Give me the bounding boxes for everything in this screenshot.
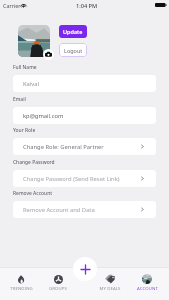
button[interactable]: Change Role: General Partner — [13, 138, 156, 155]
staticText: Email — [13, 96, 26, 103]
staticText: Change Password — [13, 159, 55, 166]
staticText: GROUPS — [49, 285, 67, 291]
button[interactable]: TRENDING — [1, 274, 41, 291]
staticText: Your Role — [13, 127, 36, 134]
staticText: Update — [63, 28, 83, 35]
button[interactable]: Logout — [59, 43, 87, 57]
staticText: Logout — [64, 47, 83, 54]
button[interactable]: kp@gmail.com — [13, 107, 156, 124]
staticText: Remove Account and Data — [23, 206, 95, 214]
staticText: Change Role: General Partner — [23, 143, 104, 151]
staticText: Carrier — [3, 2, 21, 9]
staticText: Kaival — [23, 80, 40, 88]
button[interactable]: Kaival — [13, 75, 156, 92]
staticText: MY DEALS — [99, 285, 121, 291]
button[interactable]: ACCOUNT — [127, 274, 167, 291]
staticText: Remove Account — [13, 190, 53, 197]
button[interactable]: Update — [59, 25, 87, 38]
staticText: TRENDING — [10, 285, 33, 291]
button[interactable]: Change photo — [43, 49, 54, 60]
button[interactable]: MY DEALS — [90, 274, 130, 291]
button[interactable]: Remove Account and Data — [13, 201, 156, 218]
staticText: 1:04 PM — [76, 2, 98, 10]
staticText: kp@gmail.com — [23, 112, 64, 120]
button[interactable]: Change Password (Send Reset Link) — [13, 170, 156, 187]
staticText: Full Name — [13, 64, 37, 71]
button[interactable]: GROUPS — [38, 274, 78, 291]
staticText: ACCOUNT — [137, 285, 158, 291]
staticText: Change Password (Send Reset Link) — [23, 175, 120, 183]
button[interactable]: Add — [73, 257, 97, 281]
